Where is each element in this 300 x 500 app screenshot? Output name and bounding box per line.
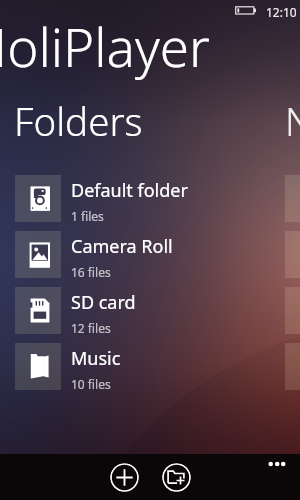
- button[interactable]: Camera Roll: [0, 225, 300, 281]
- button[interactable]: New folder: [162, 463, 191, 492]
- button[interactable]: Music: [0, 337, 300, 393]
- button[interactable]: SD card: [0, 281, 300, 337]
- staticText: 12:10: [266, 4, 297, 20]
- button[interactable]: [285, 343, 300, 390]
- button[interactable]: More options: [258, 454, 300, 500]
- staticText: MoliPlayer: [0, 10, 210, 82]
- staticText: 12 files: [71, 320, 111, 336]
- staticText: Folders: [14, 95, 143, 147]
- button[interactable]: Add: [110, 463, 139, 492]
- staticText: Music: [71, 346, 121, 371]
- staticText: SD card: [71, 290, 136, 315]
- staticText: N: [285, 95, 300, 147]
- staticText: 10 files: [71, 376, 111, 392]
- staticText: Camera Roll: [71, 234, 173, 259]
- staticText: Default folder: [71, 178, 188, 203]
- staticText: 1 files: [71, 208, 104, 224]
- staticText: 16 files: [71, 264, 111, 280]
- button[interactable]: Default folder: [0, 169, 300, 225]
- button[interactable]: [285, 287, 300, 334]
- button[interactable]: [285, 175, 300, 222]
